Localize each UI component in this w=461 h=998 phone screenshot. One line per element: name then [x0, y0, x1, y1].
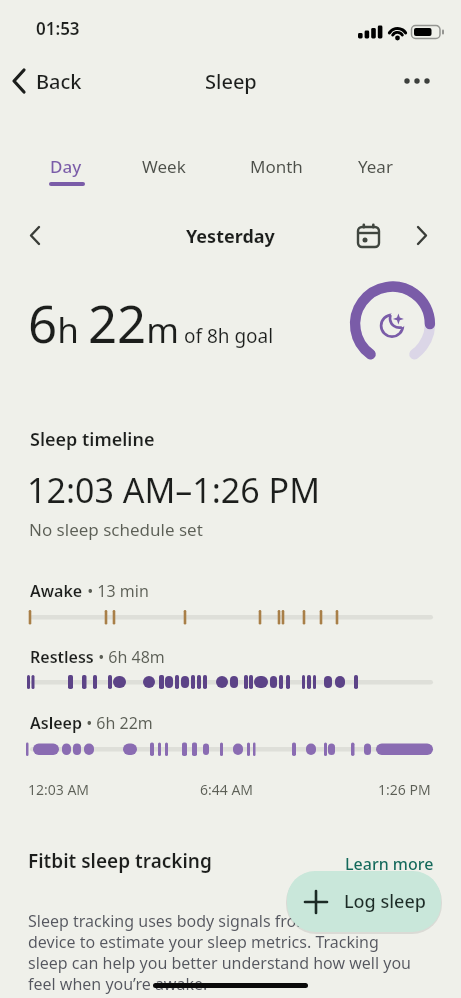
staticText: Month	[250, 155, 303, 178]
staticText: Sleep timeline	[30, 427, 155, 452]
button[interactable]	[352, 218, 386, 252]
staticText: 12:03 AM–1:26 PM	[27, 467, 321, 513]
button[interactable]	[398, 66, 436, 96]
button[interactable]: Year	[348, 148, 408, 192]
staticText: • 6h 48m	[94, 646, 165, 668]
staticText: Fitbit sleep tracking	[28, 848, 212, 874]
staticText: 01:53	[36, 17, 80, 40]
staticText: 6:44 AM	[200, 780, 254, 799]
staticText: Awake	[30, 580, 83, 602]
staticText: Sleep	[205, 68, 257, 95]
staticText: Asleep	[30, 712, 82, 734]
staticText: Year	[358, 155, 393, 178]
staticText: Back	[36, 68, 82, 95]
staticText: Sleep tracking uses body signals from yo…	[28, 910, 411, 995]
staticText: Yesterday	[186, 224, 275, 249]
staticText: Week	[142, 155, 186, 178]
button[interactable]: Month	[240, 148, 312, 192]
staticText: 6h 22m of 8h goal	[28, 288, 274, 357]
staticText: • 6h 22m	[82, 712, 153, 734]
staticText: 1:26 PM	[378, 780, 431, 799]
staticText: • 13 min	[83, 580, 149, 602]
staticText: Log sleep	[344, 889, 426, 914]
button[interactable]: Back	[8, 62, 100, 100]
button[interactable]	[18, 218, 52, 252]
button[interactable]	[405, 218, 439, 252]
button[interactable]: Week	[132, 148, 198, 192]
staticText: 12:03 AM	[28, 780, 90, 799]
button[interactable]: Log sleep	[287, 871, 441, 932]
button[interactable]: Day	[38, 148, 96, 192]
staticText: Restless	[30, 646, 94, 668]
staticText: No sleep schedule set	[29, 518, 203, 541]
staticText: Day	[50, 155, 82, 178]
